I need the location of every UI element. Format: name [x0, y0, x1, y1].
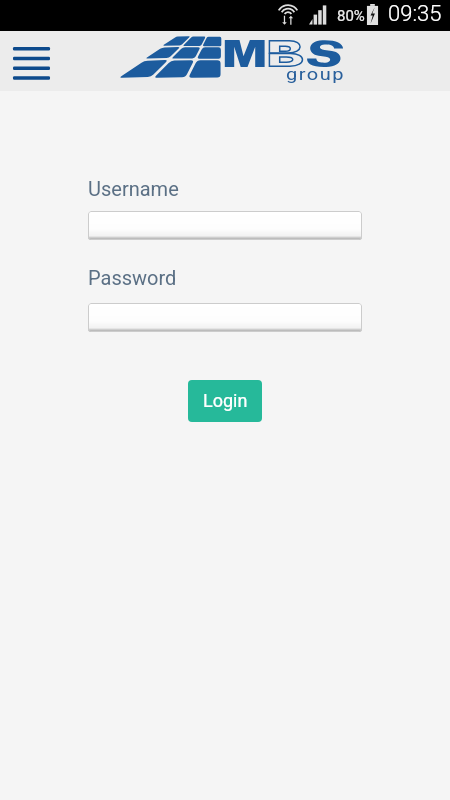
staticText: Password: [88, 266, 177, 289]
staticText: 09:35: [388, 1, 442, 27]
button[interactable]: Menu: [7, 41, 56, 85]
button[interactable]: Login: [188, 380, 262, 422]
button[interactable]: [88, 211, 362, 240]
staticText: Username: [88, 177, 179, 200]
staticText: group: [286, 65, 346, 84]
button[interactable]: [88, 303, 362, 332]
staticText: 80%: [337, 7, 365, 25]
staticText: Login: [203, 390, 248, 411]
